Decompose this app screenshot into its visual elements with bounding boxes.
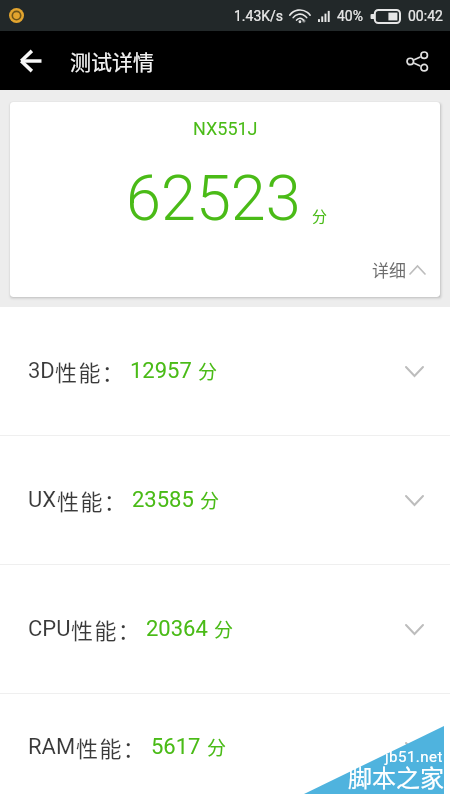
button[interactable]: UX — [0, 436, 450, 564]
staticText: 3D — [28, 358, 55, 384]
staticText: RAM — [28, 734, 76, 760]
staticText: 00:42 — [408, 8, 443, 24]
staticText: 20364 — [146, 616, 208, 642]
staticText: 12957 — [130, 358, 192, 384]
staticText: 40% — [337, 8, 363, 24]
staticText: 性能： — [71, 613, 142, 645]
staticText: 62523 — [126, 162, 301, 236]
staticText: 5617 — [151, 734, 201, 760]
staticText: 性能： — [76, 731, 147, 763]
button[interactable]: Share — [393, 37, 441, 85]
staticText: jb51.net — [385, 748, 443, 766]
staticText: UX — [28, 487, 57, 513]
staticText: 分 — [312, 205, 328, 227]
staticText: 分 — [200, 486, 220, 514]
staticText: 23585 — [132, 487, 194, 513]
staticText: 性能： — [57, 484, 128, 516]
staticText: 测试详情 — [70, 46, 154, 76]
staticText: 分 — [214, 615, 234, 643]
staticText: 详细 — [372, 257, 406, 282]
staticText: NX551J — [193, 118, 258, 139]
button[interactable]: Back — [7, 37, 55, 85]
button[interactable]: 详细 — [372, 257, 425, 282]
staticText: 分 — [207, 733, 227, 761]
staticText: 分 — [198, 357, 218, 385]
staticText: 1.43K/s — [234, 8, 284, 24]
button[interactable]: RAM — [0, 694, 450, 800]
button[interactable]: CPU — [0, 565, 450, 693]
staticText: CPU — [28, 616, 71, 642]
staticText: 性能： — [55, 355, 126, 387]
button[interactable]: 3D — [0, 307, 450, 435]
staticText: 脚本之家 — [348, 759, 444, 794]
